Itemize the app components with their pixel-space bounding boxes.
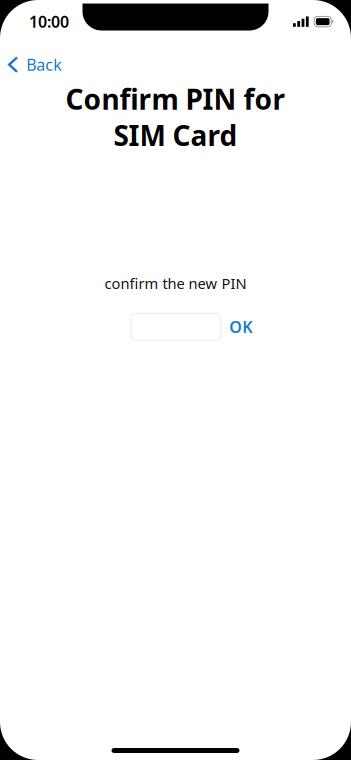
staticText: Confirm PIN for [65, 80, 285, 117]
staticText: SIM Card [113, 116, 237, 154]
button[interactable]: OK [229, 310, 252, 343]
button[interactable]: Back [0, 47, 74, 82]
staticText: 10:00 [29, 11, 69, 32]
staticText: Back [26, 54, 62, 75]
staticText: OK [229, 316, 252, 337]
staticText: confirm the new PIN [104, 274, 246, 293]
